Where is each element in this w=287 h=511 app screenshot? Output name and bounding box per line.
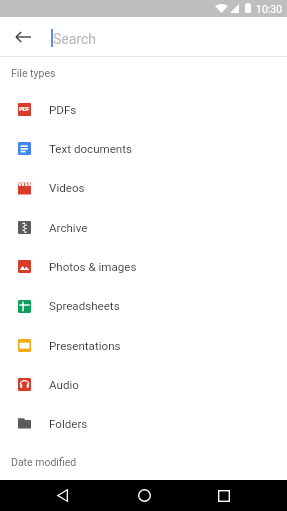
staticText: Spreadsheets [49,299,120,313]
button[interactable]: Folders [0,404,287,443]
button[interactable]: PDF [0,90,287,129]
button[interactable]: Home [118,480,170,511]
staticText: Search [53,31,97,47]
button[interactable]: Recents [198,480,250,511]
button[interactable]: Spreadsheets [0,286,287,326]
button[interactable]: Presentations [0,326,287,365]
staticText: File types [11,67,56,79]
staticText: 10:30 [256,3,283,15]
staticText: Archive [49,221,88,235]
staticText: Date modified [11,456,77,468]
button[interactable]: Archive [0,208,287,247]
staticText: Audio [49,378,79,392]
button[interactable]: Back [36,480,88,511]
button[interactable]: Photos & images [0,247,287,286]
staticText: Photos & images [49,260,137,274]
staticText: Videos [49,181,85,195]
button[interactable]: Back [9,22,38,51]
staticText: PDFs [49,103,77,117]
staticText: PDF [19,106,30,113]
button[interactable]: Audio [0,365,287,404]
button[interactable]: Text documents [0,129,287,168]
staticText: Text documents [49,142,133,156]
staticText: Presentations [49,339,121,353]
staticText: Folders [49,417,88,431]
button[interactable]: Videos [0,168,287,208]
